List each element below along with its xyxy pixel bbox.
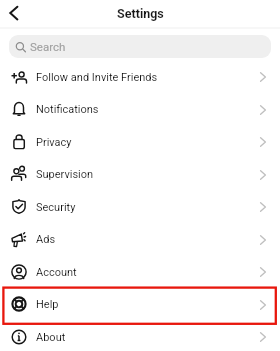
staticText: Notifications [36,103,99,116]
staticText: Settings [117,6,164,21]
button[interactable]: Follow and Invite Friends [0,61,280,93]
staticText: Follow and Invite Friends [36,71,158,84]
staticText: Supervision [36,168,94,181]
button[interactable]: Security [0,191,280,223]
button[interactable]: About [0,321,280,351]
staticText: Search [30,40,66,53]
staticText: Help [36,298,59,311]
staticText: About [36,331,66,344]
button[interactable]: Search [9,35,271,58]
button[interactable]: Privacy [0,126,280,158]
staticText: Account [36,266,77,279]
staticText: Ads [36,233,56,246]
staticText: Security [36,201,76,214]
button[interactable]: Help [0,288,280,320]
button[interactable]: Supervision [0,158,280,190]
button[interactable]: Ads [0,223,280,255]
button[interactable]: Account [0,256,280,288]
staticText: Privacy [36,136,72,149]
button[interactable]: Notifications [0,93,280,125]
button[interactable]: Back [3,2,24,23]
